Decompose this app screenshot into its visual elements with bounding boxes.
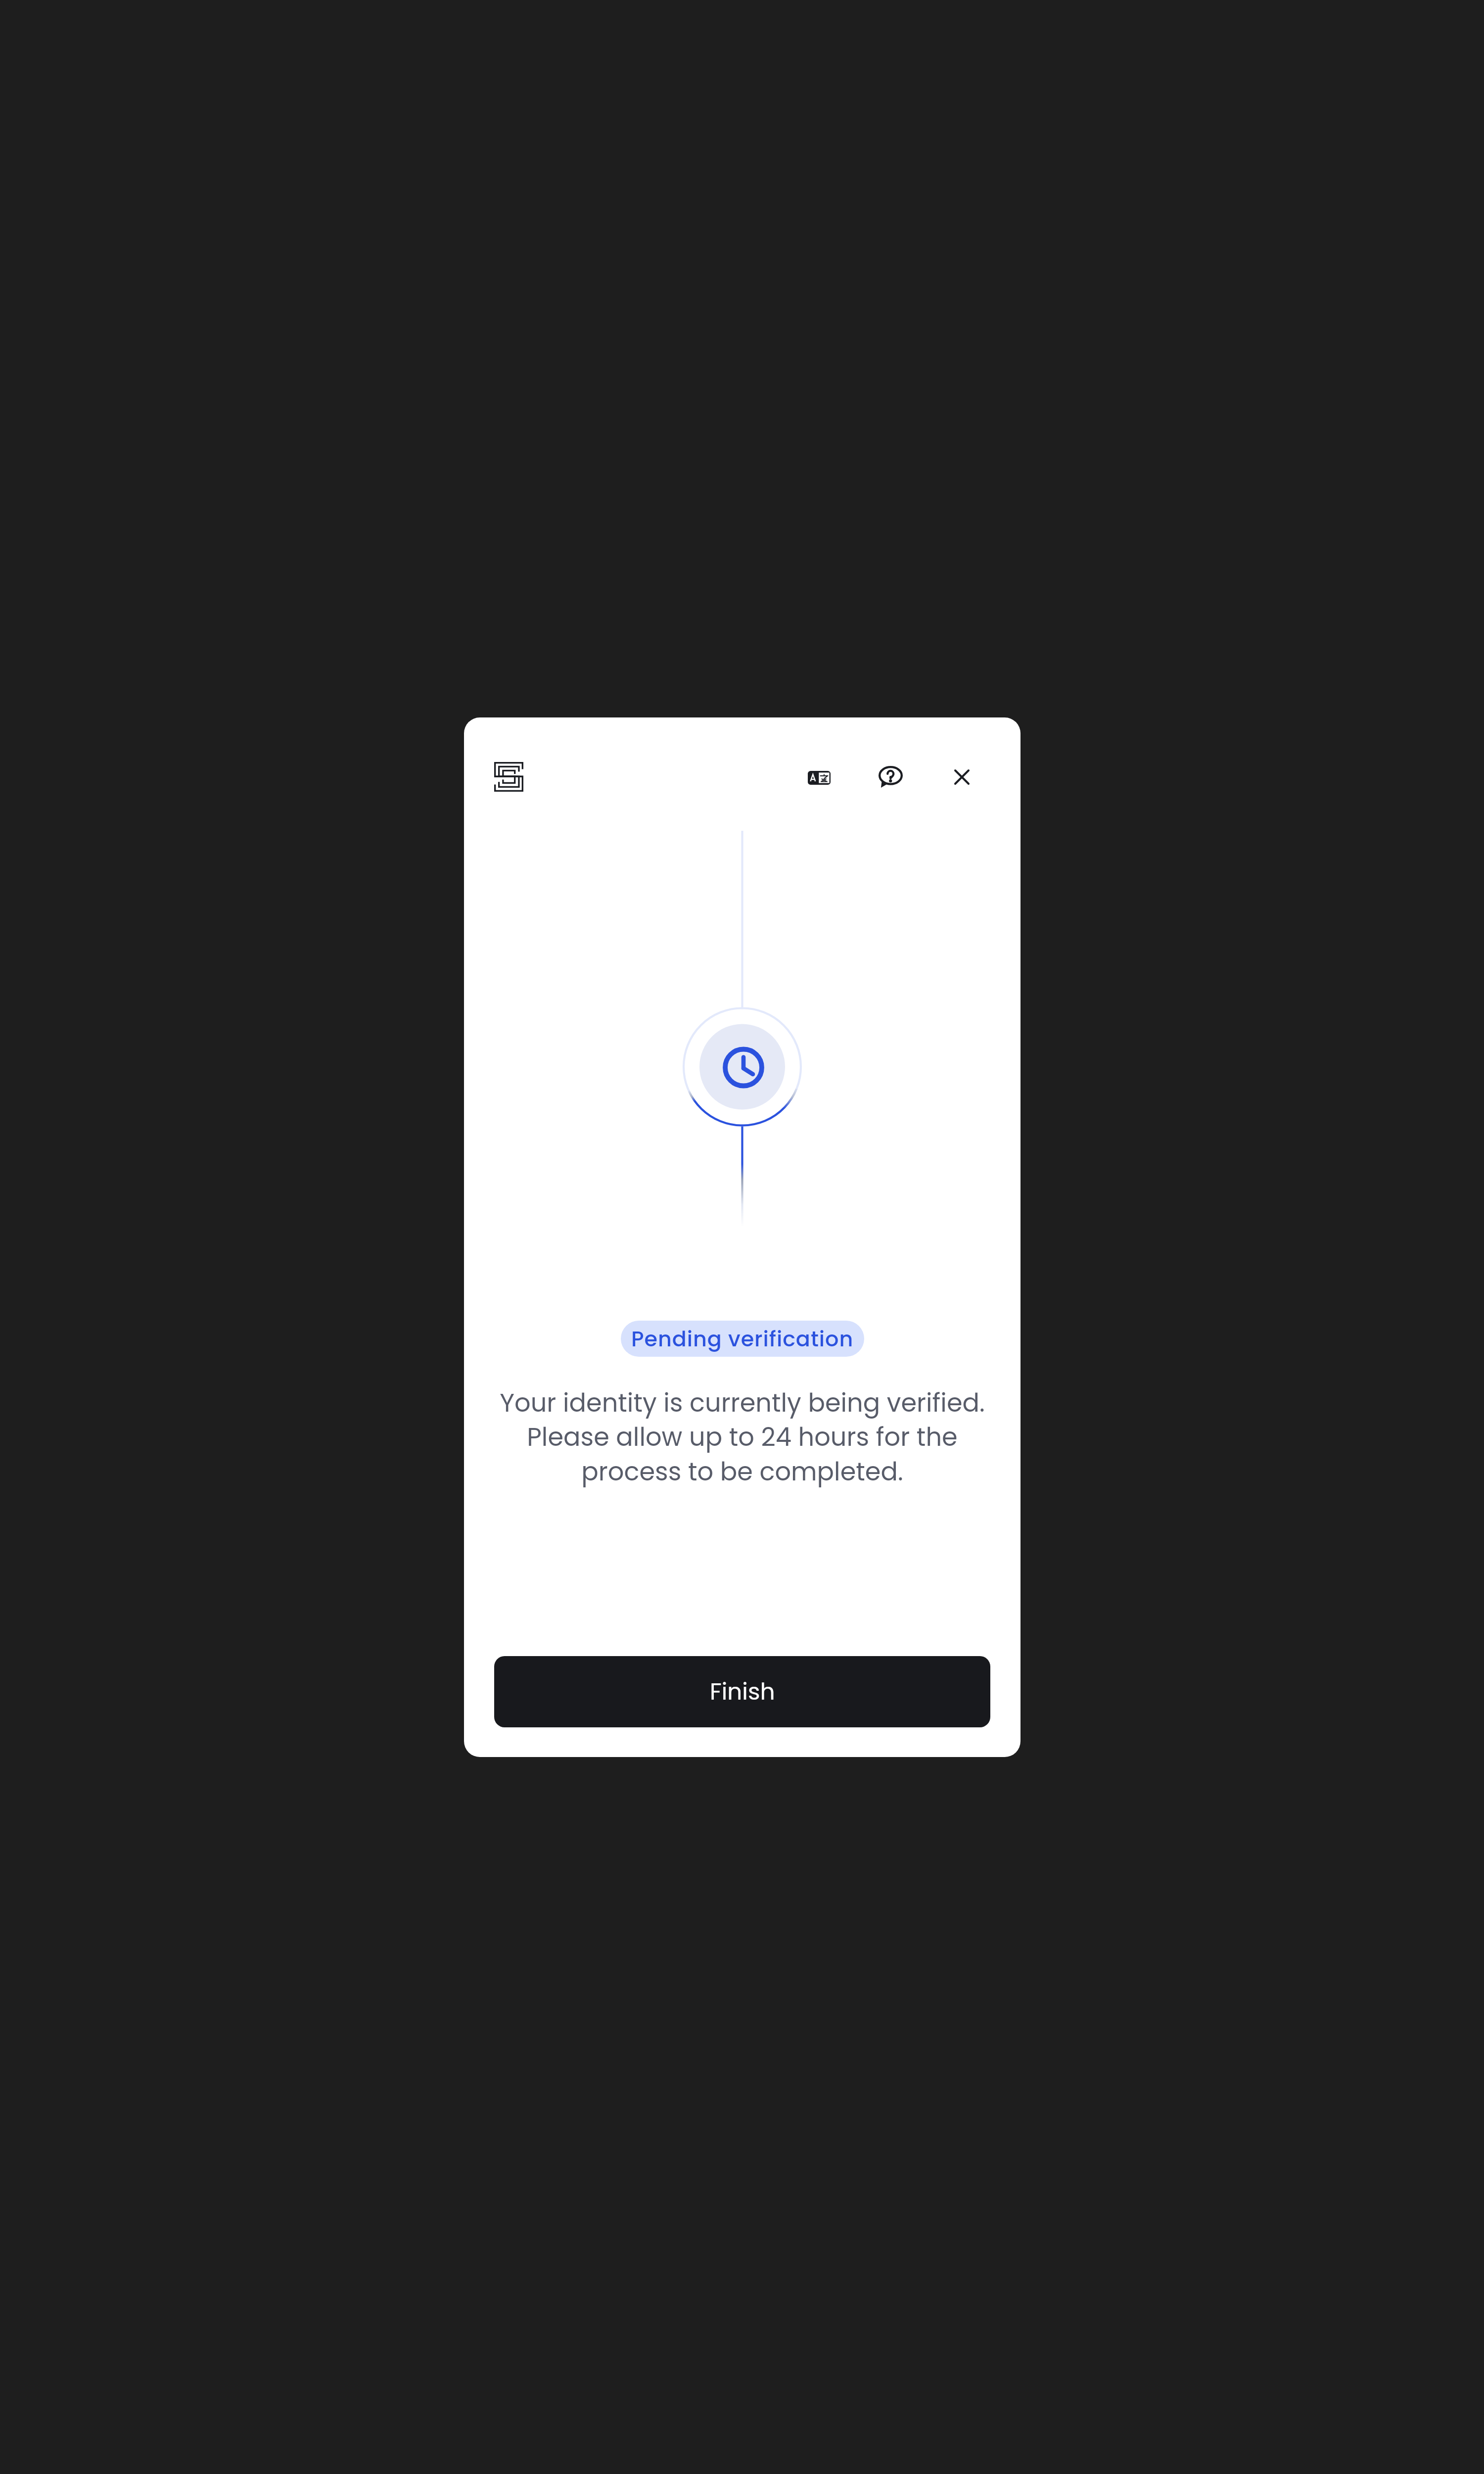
button[interactable]: Close bbox=[943, 758, 980, 796]
staticText: Pending verification bbox=[631, 1324, 854, 1354]
staticText: Finish bbox=[710, 1675, 775, 1708]
button[interactable]: Sumsub bbox=[491, 759, 526, 795]
staticText: Your identity is currently being verifie… bbox=[492, 1385, 993, 1489]
button[interactable]: Help bbox=[872, 758, 909, 796]
button[interactable]: Change language bbox=[800, 759, 838, 797]
button[interactable]: Pending verification bbox=[621, 1321, 864, 1357]
button[interactable]: Finish bbox=[494, 1656, 990, 1727]
